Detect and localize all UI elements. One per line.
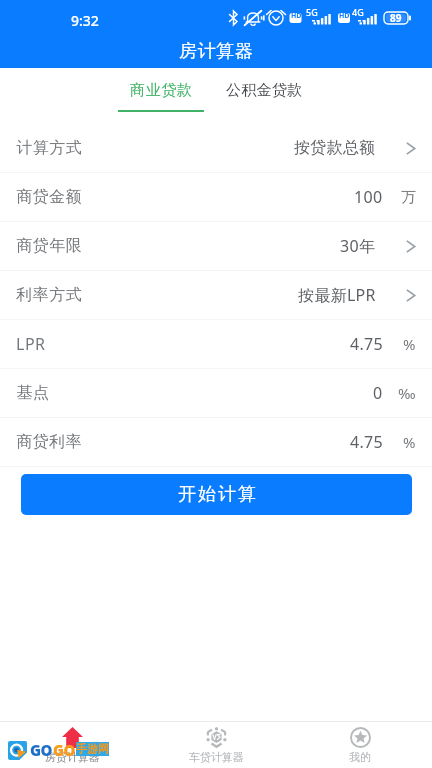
staticText: 30年 bbox=[340, 235, 376, 257]
staticText: 4.75 bbox=[350, 333, 383, 355]
button[interactable]: LPR bbox=[0, 320, 432, 369]
staticText: HD bbox=[339, 11, 350, 21]
staticText: 手游网 bbox=[76, 742, 109, 756]
staticText: 5G bbox=[306, 6, 318, 18]
staticText: 开始计算 bbox=[177, 483, 257, 506]
staticText: 公积金贷款 bbox=[226, 81, 303, 100]
staticText: 房贷计算器 bbox=[45, 750, 100, 764]
staticText: 商贷年限 bbox=[16, 236, 82, 256]
button[interactable]: 计算方式 bbox=[0, 124, 432, 173]
staticText: % bbox=[403, 432, 416, 452]
staticText: GO bbox=[53, 740, 76, 760]
button[interactable]: 利率方式 bbox=[0, 271, 432, 320]
staticText: 4.75 bbox=[350, 431, 383, 453]
staticText: LPR bbox=[16, 333, 46, 355]
staticText: % bbox=[403, 334, 416, 354]
button[interactable]: 商贷金额 bbox=[0, 173, 432, 222]
staticText: HD bbox=[291, 11, 302, 21]
staticText: 按贷款总额 bbox=[294, 138, 376, 158]
button[interactable]: 我的 bbox=[288, 722, 432, 768]
staticText: 我的 bbox=[349, 750, 371, 764]
staticText: 利率方式 bbox=[16, 285, 82, 305]
staticText: 商贷利率 bbox=[16, 432, 82, 452]
staticText: 按最新LPR bbox=[298, 284, 376, 306]
button[interactable]: 公积金贷款 bbox=[219, 68, 310, 124]
button[interactable]: 开始计算 bbox=[21, 474, 412, 515]
staticText: 商贷金额 bbox=[16, 187, 82, 207]
staticText: 100 bbox=[354, 186, 383, 208]
staticText: 车贷计算器 bbox=[189, 750, 244, 764]
staticText: 房计算器 bbox=[179, 40, 253, 63]
button[interactable]: 商贷利率 bbox=[0, 418, 432, 467]
staticText: 万 bbox=[401, 188, 416, 207]
button[interactable]: 车贷计算器 bbox=[144, 722, 288, 768]
staticText: 9:32 bbox=[71, 11, 99, 30]
staticText: 基点 bbox=[16, 383, 49, 403]
button[interactable]: 商业贷款 bbox=[118, 68, 204, 124]
staticText: 4G bbox=[352, 6, 364, 18]
button[interactable]: 房贷计算器 bbox=[0, 722, 144, 768]
staticText: 0 bbox=[373, 382, 383, 404]
staticText: 商业贷款 bbox=[130, 81, 193, 100]
staticText: 计算方式 bbox=[16, 138, 82, 158]
staticText: ‰ bbox=[398, 383, 416, 403]
button[interactable]: 商贷年限 bbox=[0, 222, 432, 271]
staticText: 89 bbox=[390, 11, 402, 25]
staticText: GO bbox=[30, 740, 53, 760]
button[interactable]: 基点 bbox=[0, 369, 432, 418]
